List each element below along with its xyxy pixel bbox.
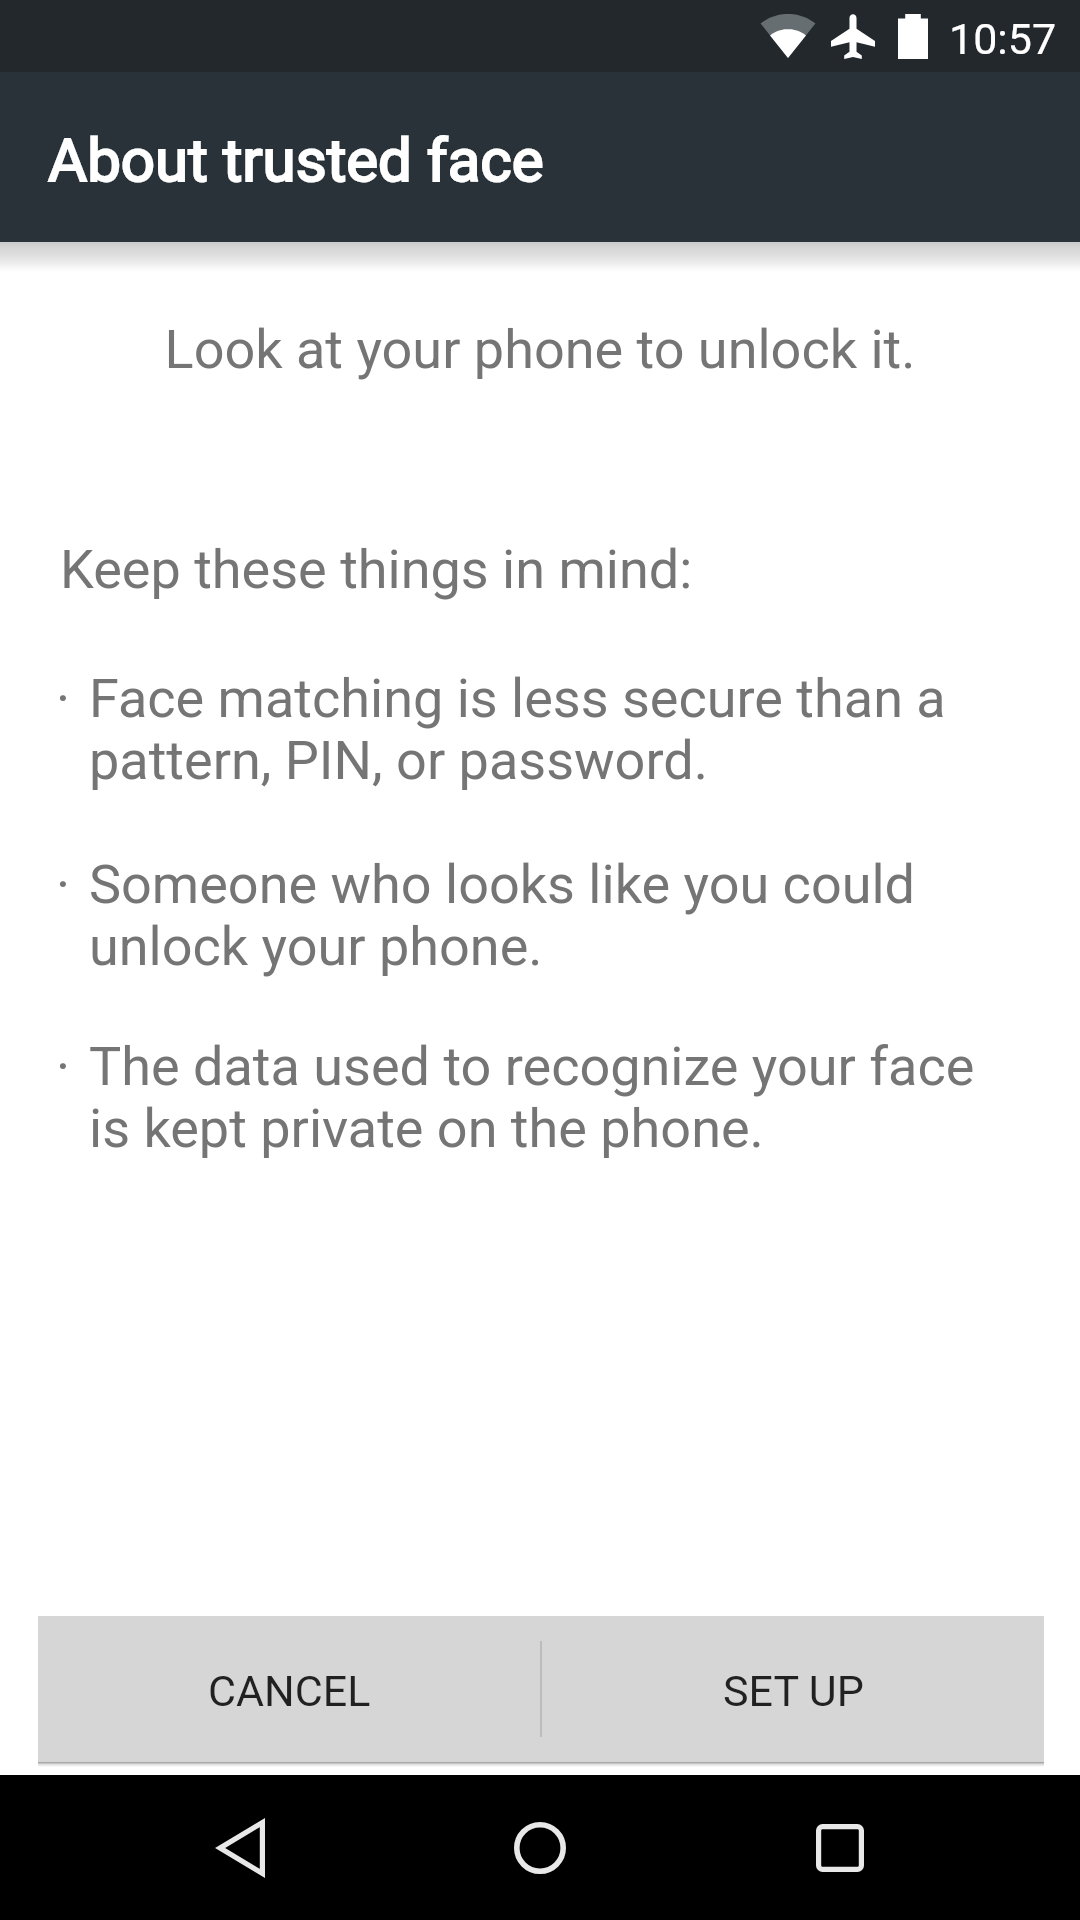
button[interactable]: CANCEL bbox=[38, 1616, 540, 1762]
staticText: Face matching is less secure than a patt… bbox=[89, 667, 1000, 792]
staticText: SET UP bbox=[723, 1666, 864, 1716]
staticText: Keep these things in mind: bbox=[60, 538, 693, 601]
staticText: · bbox=[56, 1035, 71, 1098]
button[interactable]: SET UP bbox=[542, 1616, 1044, 1762]
staticText: About trusted face bbox=[48, 125, 544, 195]
staticText: Someone who looks like you could unlock … bbox=[89, 853, 1000, 978]
button[interactable]: Recent apps bbox=[780, 1788, 900, 1908]
staticText: · bbox=[56, 853, 71, 916]
staticText: Look at your phone to unlock it. bbox=[0, 318, 1080, 381]
staticText: CANCEL bbox=[208, 1666, 371, 1716]
staticText: 10:57 bbox=[949, 14, 1057, 64]
button[interactable]: Home bbox=[480, 1788, 600, 1908]
button[interactable]: Back bbox=[180, 1788, 300, 1908]
staticText: · bbox=[56, 667, 71, 730]
staticText: The data used to recognize your face is … bbox=[89, 1035, 1000, 1160]
